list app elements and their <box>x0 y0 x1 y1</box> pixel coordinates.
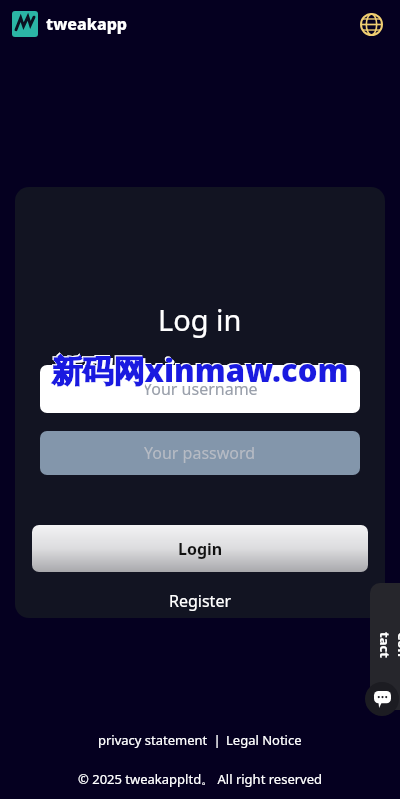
staticText: Log in <box>158 300 242 339</box>
staticText: Legal Notice <box>226 731 302 749</box>
staticText: Your username <box>143 378 258 400</box>
staticText: | <box>210 731 224 749</box>
button[interactable]: Register <box>135 586 265 616</box>
staticText: 新码网xinmaw.com <box>51 349 349 391</box>
staticText: Login <box>178 538 223 560</box>
button[interactable]: Your password <box>40 431 360 475</box>
staticText: tweakapp <box>46 13 128 35</box>
button[interactable]: Legal Notice <box>224 728 304 752</box>
button[interactable]: Chat <box>365 682 399 716</box>
button[interactable]: privacy statement <box>96 728 210 752</box>
button[interactable]: Language <box>354 7 388 41</box>
button[interactable]: Contact us <box>370 583 400 710</box>
button[interactable]: tweakapp <box>12 11 128 37</box>
staticText: 新码网xinmaw.com <box>53 351 351 393</box>
staticText: 新码网xinmaw.com <box>50 348 348 390</box>
staticText: Your password <box>144 442 256 464</box>
button[interactable]: Your username <box>40 365 360 413</box>
staticText: Register <box>169 590 232 612</box>
staticText: privacy statement <box>98 731 208 749</box>
staticText: © 2025 tweakappltd。 All right reserved <box>78 770 323 788</box>
button[interactable]: Login <box>32 525 368 572</box>
staticText: Contact us <box>370 632 400 662</box>
